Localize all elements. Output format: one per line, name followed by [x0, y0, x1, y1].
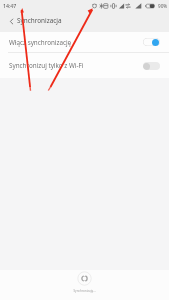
staticText: 90%	[158, 3, 168, 9]
staticText: Synchronizacja	[17, 16, 62, 25]
staticText: Synchronizuję...	[73, 289, 96, 293]
staticText: Włącz synchronizację	[9, 38, 72, 47]
button[interactable]: Włącz	[143, 62, 160, 70]
staticText: Synchronizuj tylko z Wi-Fi	[9, 61, 84, 70]
button[interactable]: Wyłącz	[143, 38, 160, 46]
button[interactable]: Włącz synchronizację	[0, 32, 169, 52]
button[interactable]: Synchronizuj tylko z Wi-Fi	[0, 53, 169, 76]
staticText: 14:47	[3, 2, 17, 9]
button[interactable]: Wstecz	[2, 12, 20, 30]
button[interactable]: Synchronizuj	[77, 271, 92, 286]
